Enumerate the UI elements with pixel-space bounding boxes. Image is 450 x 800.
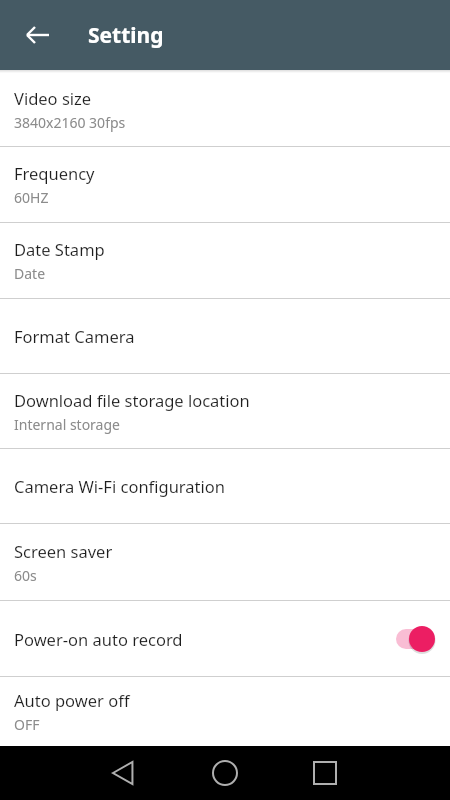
staticText: Date Stamp xyxy=(14,238,105,260)
staticText: Power-on auto record xyxy=(14,628,183,650)
staticText: Camera Wi-Fi configuration xyxy=(14,475,225,497)
button[interactable]: Video size xyxy=(0,73,450,146)
staticText: 60HZ xyxy=(14,188,49,207)
button[interactable]: Frequency xyxy=(0,147,450,222)
staticText: Download file storage location xyxy=(14,389,250,411)
staticText: Format Camera xyxy=(14,325,135,347)
staticText: Date xyxy=(14,264,46,283)
button[interactable]: Camera Wi-Fi configuration xyxy=(0,449,450,523)
button[interactable]: Back xyxy=(18,15,58,55)
staticText: 60s xyxy=(14,566,37,585)
button[interactable]: Back xyxy=(105,753,145,793)
button[interactable]: Power-on auto record xyxy=(0,601,450,676)
staticText: Internal storage xyxy=(14,415,120,434)
button[interactable]: Format Camera xyxy=(0,299,450,373)
button[interactable]: Screen saver xyxy=(0,524,450,600)
button[interactable]: Home xyxy=(205,753,245,793)
staticText: Setting xyxy=(88,21,164,50)
staticText: Frequency xyxy=(14,162,95,184)
staticText: Video size xyxy=(14,87,92,109)
button[interactable]: Date Stamp xyxy=(0,223,450,298)
button[interactable]: Recent apps xyxy=(305,753,345,793)
button[interactable]: Power-on auto record switch, on xyxy=(396,624,432,654)
staticText: OFF xyxy=(14,715,40,734)
button[interactable]: Auto power off xyxy=(0,677,450,746)
staticText: Screen saver xyxy=(14,540,113,562)
button[interactable]: Download file storage location xyxy=(0,374,450,448)
staticText: 3840x2160 30fps xyxy=(14,113,126,132)
staticText: Auto power off xyxy=(14,689,130,711)
